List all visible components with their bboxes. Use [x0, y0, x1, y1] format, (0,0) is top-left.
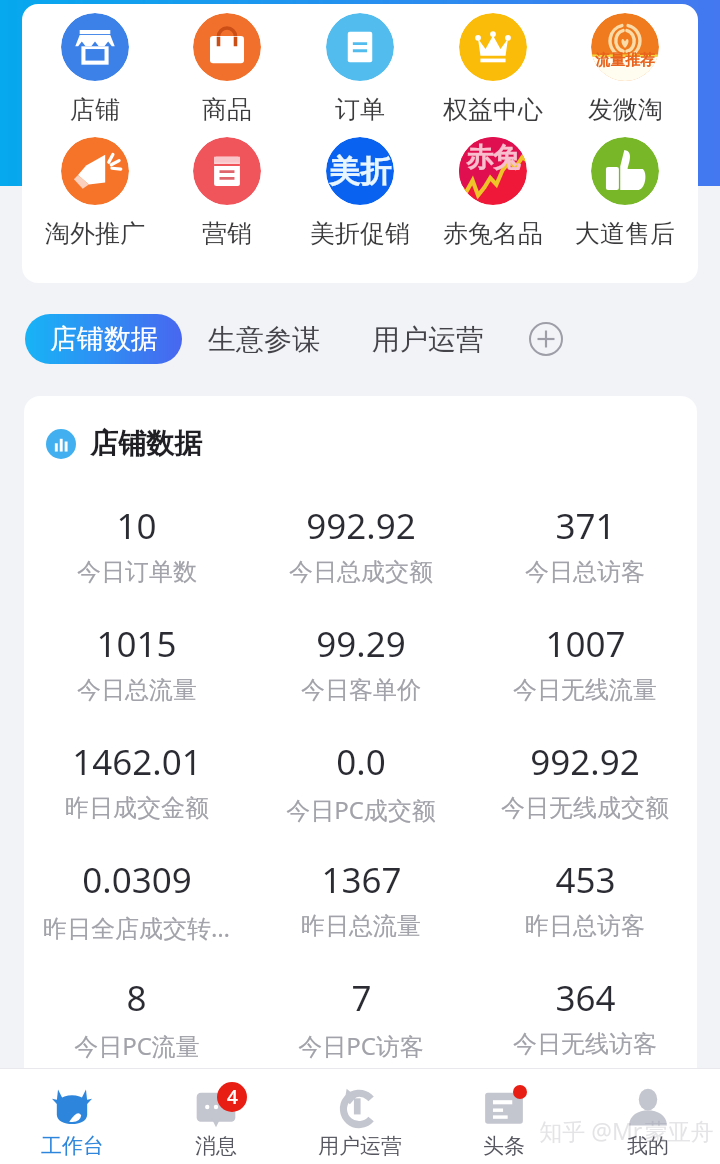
staticText: 我的 — [627, 1133, 669, 1159]
button[interactable]: 店铺数据 — [25, 314, 182, 364]
staticText: 今日总访客 — [525, 557, 645, 587]
staticText: 99.29 — [316, 620, 406, 668]
button[interactable]: 371 — [473, 502, 697, 587]
button[interactable]: 992.92 — [249, 502, 473, 587]
staticText: 头条 — [483, 1133, 525, 1159]
button[interactable]: 流量推荐 — [565, 13, 685, 125]
staticText: 992.92 — [306, 502, 416, 550]
staticText: 8 — [126, 974, 147, 1022]
button[interactable]: 我的 — [576, 1073, 720, 1159]
staticText: 商品 — [202, 94, 252, 125]
staticText: 赤兔名品 — [443, 218, 543, 249]
button[interactable]: 364 — [473, 974, 697, 1059]
button[interactable]: 1462.01 — [24, 738, 249, 823]
staticText: 今日客单价 — [301, 675, 421, 705]
staticText: 今日总成交额 — [289, 557, 433, 587]
staticText: 订单 — [335, 94, 385, 125]
staticText: 今日PC访客 — [298, 1029, 424, 1062]
staticText: 今日订单数 — [77, 557, 197, 587]
button[interactable]: 商品 — [167, 13, 287, 125]
button[interactable]: 淘外推广 — [35, 137, 155, 249]
staticText: 992.92 — [530, 738, 640, 786]
staticText: 赤兔 — [466, 141, 520, 175]
staticText: 371 — [555, 502, 616, 550]
button[interactable]: 4 — [144, 1073, 288, 1159]
button[interactable]: 7 — [249, 974, 473, 1062]
staticText: 流量推荐 — [595, 51, 655, 70]
button[interactable]: 用户运营 — [346, 314, 510, 364]
button[interactable]: Add tab — [529, 322, 563, 356]
button[interactable]: 权益中心 — [433, 13, 553, 125]
staticText: 淘外推广 — [45, 218, 145, 249]
staticText: 今日PC成交额 — [286, 793, 436, 826]
staticText: 0.0309 — [82, 856, 192, 904]
staticText: 今日PC流量 — [74, 1029, 200, 1062]
button[interactable]: 大道售后 — [565, 137, 685, 249]
staticText: 今日总流量 — [77, 675, 197, 705]
staticText: 10 — [116, 502, 157, 550]
staticText: 用户运营 — [372, 322, 484, 357]
staticText: 知乎 @Mr.蒙亚舟 — [539, 1115, 714, 1146]
button[interactable]: 0.0 — [249, 738, 473, 826]
button[interactable]: 工作台 — [0, 1073, 144, 1159]
staticText: 364 — [555, 974, 616, 1022]
staticText: 生意参谋 — [208, 322, 320, 357]
staticText: 用户运营 — [318, 1133, 402, 1159]
staticText: 昨日成交金额 — [65, 793, 209, 823]
staticText: 1367 — [321, 856, 402, 904]
staticText: 昨日总访客 — [525, 911, 645, 941]
staticText: 1015 — [96, 620, 177, 668]
staticText: 今日无线成交额 — [501, 793, 669, 823]
button[interactable]: 1015 — [24, 620, 249, 705]
button[interactable]: 生意参谋 — [182, 314, 346, 364]
button[interactable]: 订单 — [300, 13, 420, 125]
staticText: 4 — [227, 1084, 238, 1110]
staticText: 营销 — [202, 218, 252, 249]
button[interactable]: 1007 — [473, 620, 697, 705]
staticText: 店铺 — [70, 94, 120, 125]
staticText: 工作台 — [41, 1133, 104, 1159]
staticText: 美折 — [329, 152, 391, 191]
staticText: 453 — [555, 856, 616, 904]
button[interactable]: 10 — [24, 502, 249, 587]
staticText: 昨日总流量 — [301, 911, 421, 941]
staticText: 1007 — [545, 620, 626, 668]
button[interactable]: 1367 — [249, 856, 473, 941]
button[interactable]: 992.92 — [473, 738, 697, 823]
staticText: 发微淘 — [588, 94, 663, 125]
staticText: 7 — [351, 974, 372, 1022]
staticText: 0.0 — [336, 738, 386, 786]
staticText: 今日无线访客 — [513, 1029, 657, 1059]
button[interactable]: 营销 — [167, 137, 287, 249]
button[interactable]: 店铺 — [35, 13, 155, 125]
button[interactable]: 8 — [24, 974, 249, 1062]
staticText: 今日无线流量 — [513, 675, 657, 705]
staticText: 昨日全店成交转… — [43, 911, 230, 944]
staticText: 店铺数据 — [50, 322, 158, 356]
button[interactable]: 头条 — [432, 1073, 576, 1159]
button[interactable]: 99.29 — [249, 620, 473, 705]
button[interactable]: 赤兔 — [433, 137, 553, 249]
staticText: 大道售后 — [575, 218, 675, 249]
button[interactable]: 453 — [473, 856, 697, 941]
button[interactable]: 0.0309 — [24, 856, 249, 944]
button[interactable]: 美折 — [300, 137, 420, 249]
staticText: 权益中心 — [443, 94, 543, 125]
staticText: 1462.01 — [72, 738, 202, 786]
button[interactable]: 用户运营 — [288, 1073, 432, 1159]
staticText: 美折促销 — [310, 218, 410, 249]
staticText: 店铺数据 — [90, 426, 202, 461]
staticText: 消息 — [195, 1133, 237, 1159]
